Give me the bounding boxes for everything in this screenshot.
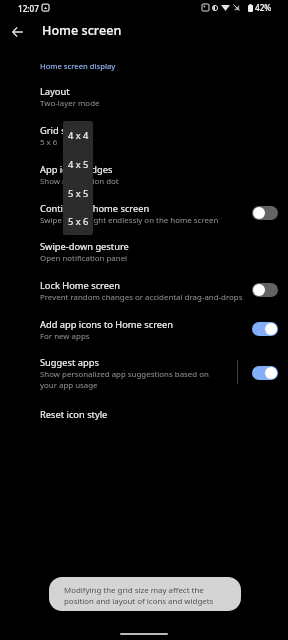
staticText: For new apps bbox=[40, 331, 90, 342]
staticText: Open notification panel bbox=[40, 253, 128, 264]
button[interactable]: Grid size bbox=[0, 124, 288, 149]
staticText: Show personalized app suggestions based … bbox=[40, 369, 209, 390]
button[interactable]: Lock Home screen bbox=[0, 279, 288, 304]
staticText: Add app icons to Home screen bbox=[40, 318, 174, 331]
staticText: Swipe-down gesture bbox=[40, 240, 129, 253]
button[interactable]: Suggest apps bbox=[0, 356, 288, 393]
staticText: 42% bbox=[255, 2, 272, 13]
button[interactable]: Back bbox=[5, 20, 29, 44]
staticText: 4 x 5 bbox=[68, 158, 89, 171]
button[interactable]: Turn off bbox=[252, 366, 278, 380]
staticText: 5 x 6 bbox=[68, 215, 89, 228]
button[interactable]: Turn on bbox=[252, 206, 278, 220]
button[interactable]: Swipe-down gesture bbox=[0, 240, 288, 265]
staticText: Home screen bbox=[42, 22, 122, 39]
staticText: Continuous home screen bbox=[40, 202, 150, 215]
button[interactable]: Modifying the grid size may affect the p… bbox=[49, 577, 241, 611]
staticText: Layout bbox=[40, 85, 70, 98]
button[interactable]: 5 x 6 bbox=[63, 208, 93, 235]
staticText: Reset icon style bbox=[40, 408, 108, 421]
staticText: Prevent random changes or accidental dra… bbox=[40, 292, 243, 303]
button[interactable]: 4 x 5 bbox=[63, 150, 93, 179]
staticText: 5 x 5 bbox=[68, 187, 89, 200]
button[interactable]: Reset icon style bbox=[0, 408, 288, 421]
staticText: Swipe left or right endlessly on the hom… bbox=[40, 215, 219, 226]
staticText: Modifying the grid size may affect the p… bbox=[64, 585, 214, 606]
staticText: Lock Home screen bbox=[40, 279, 121, 292]
staticText: Grid size bbox=[40, 124, 78, 137]
button[interactable]: 4 x 4 bbox=[63, 121, 93, 150]
button[interactable]: Continuous home screen bbox=[0, 202, 288, 227]
button[interactable]: Turn off bbox=[252, 322, 278, 336]
button[interactable]: 5 x 5 bbox=[63, 179, 93, 208]
staticText: Show notification dot bbox=[40, 176, 119, 187]
button[interactable]: App icon badges bbox=[0, 163, 288, 188]
staticText: Suggest apps bbox=[40, 356, 99, 369]
button[interactable]: Layout bbox=[0, 85, 288, 110]
staticText: App icon badges bbox=[40, 163, 113, 176]
staticText: 5 x 6 bbox=[40, 137, 58, 148]
button[interactable]: Turn on bbox=[252, 283, 278, 297]
staticText: 4 x 4 bbox=[68, 129, 89, 142]
staticText: Home screen display bbox=[40, 61, 116, 71]
button[interactable]: Add app icons to Home screen bbox=[0, 318, 288, 343]
staticText: 12:07 bbox=[18, 3, 39, 14]
staticText: Two-layer mode bbox=[40, 98, 100, 109]
